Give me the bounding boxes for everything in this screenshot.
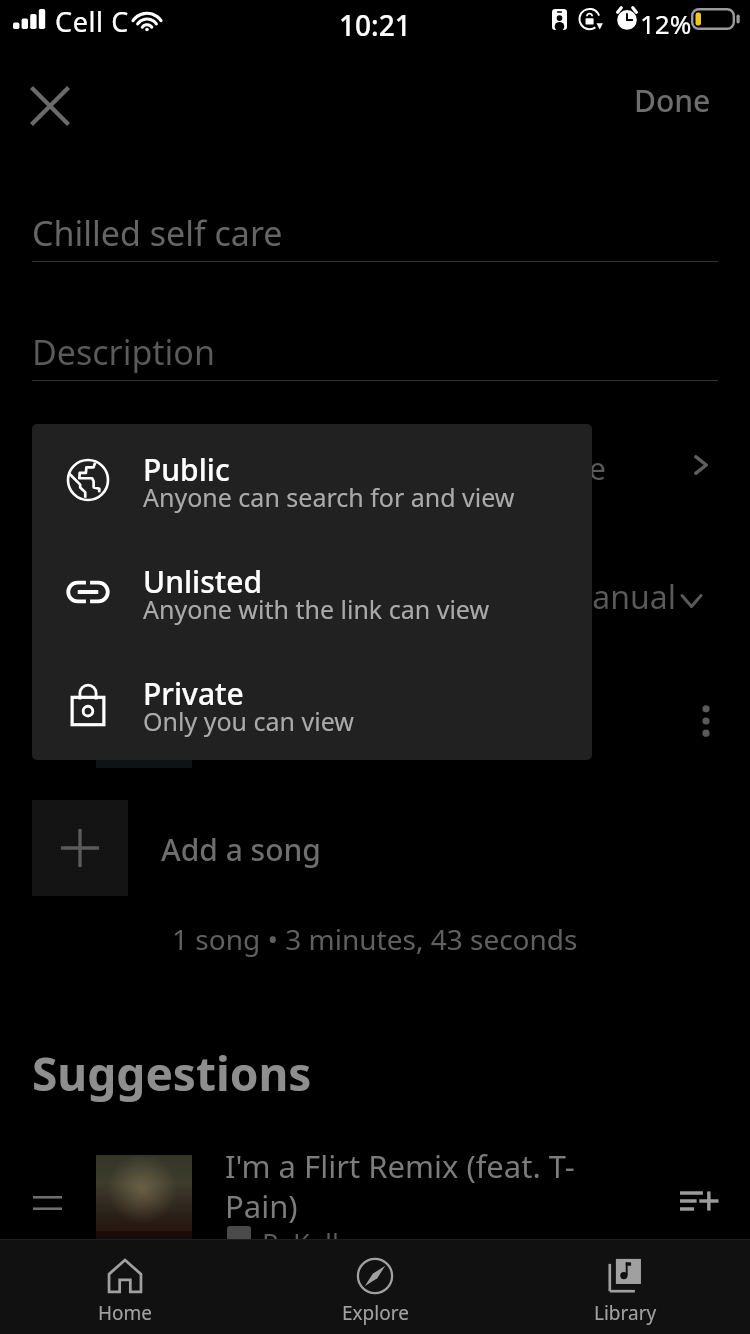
button[interactable]: Explore [250,1244,500,1334]
staticText: Private [143,673,244,714]
button[interactable]: Close [20,76,80,136]
button[interactable]: Add a song [32,800,128,896]
staticText: Chilled self care [32,210,283,256]
button[interactable]: Reorder [33,1196,62,1210]
staticText: Manual [400,575,676,619]
button[interactable]: Library [500,1244,750,1334]
staticText: R. Kelly [262,1225,353,1262]
button[interactable]: Public [32,424,592,536]
staticText: Only you can view [143,704,354,738]
staticText: Public [143,449,230,490]
staticText: Description [32,329,215,375]
staticText: Unlisted [143,561,263,602]
staticText: 12% [640,6,692,41]
staticText: 10:21 [339,6,411,44]
staticText: Anyone can search for and view [143,480,515,514]
button[interactable]: Add to queue [680,1191,717,1211]
staticText: Library [594,1300,657,1326]
button[interactable]: Reorder [0,1140,750,1250]
staticText: Explore [342,1300,409,1326]
staticText: 1 song • 3 minutes, 43 seconds [172,920,578,958]
staticText: Suggestions [32,1042,312,1105]
staticText: Home [98,1300,153,1326]
button[interactable]: Done [614,72,730,128]
button[interactable]: Unlisted [32,536,592,648]
button[interactable]: Home [0,1244,250,1334]
staticText: I'm a Flirt Remix (feat. T-Pain) [225,1145,577,1227]
staticText: Anyone with the link can view [143,592,490,626]
staticText: Private [430,448,606,489]
staticText: Done [634,80,711,121]
staticText: Add a song [161,829,321,870]
button[interactable]: Private [32,648,592,760]
button[interactable]: More options [692,702,720,740]
staticText: Cell C [55,3,129,40]
